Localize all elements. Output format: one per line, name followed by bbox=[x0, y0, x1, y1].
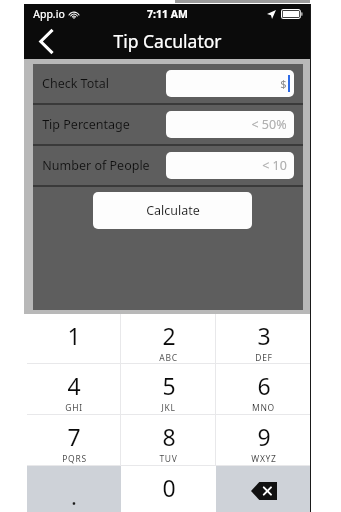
button[interactable]: 8 bbox=[121, 415, 216, 465]
staticText: 1 bbox=[67, 320, 81, 351]
staticText: MNO bbox=[252, 402, 275, 414]
staticText: GHI bbox=[65, 402, 83, 414]
staticText: 2 bbox=[162, 320, 176, 351]
staticText: App.io bbox=[33, 7, 65, 21]
staticText: < 50% bbox=[251, 116, 287, 133]
staticText: . bbox=[71, 481, 77, 511]
staticText: Tip Caculator bbox=[113, 29, 222, 53]
button[interactable]: 3 bbox=[216, 314, 311, 363]
staticText: < 10 bbox=[262, 157, 287, 174]
staticText: WXYZ bbox=[251, 453, 277, 465]
staticText: 9 bbox=[257, 421, 271, 452]
staticText: 5 bbox=[162, 370, 176, 401]
button[interactable]: 5 bbox=[121, 364, 216, 414]
button[interactable]: 7 bbox=[27, 415, 121, 465]
button[interactable]: Backspace bbox=[216, 466, 311, 512]
button[interactable]: Check Total bbox=[33, 64, 303, 103]
button[interactable]: 1 bbox=[27, 314, 121, 363]
button[interactable]: Number of People bbox=[33, 146, 303, 185]
staticText: Calculate bbox=[146, 202, 200, 219]
staticText: DEF bbox=[255, 352, 273, 363]
button[interactable]: Tip Percentage bbox=[33, 105, 303, 144]
staticText: 7 bbox=[67, 421, 81, 452]
staticText: 6 bbox=[257, 370, 271, 401]
staticText: Tip Percentage bbox=[42, 116, 130, 133]
staticText: TUV bbox=[159, 453, 178, 465]
staticText: 4 bbox=[67, 370, 81, 401]
button[interactable]: Calculate bbox=[93, 192, 252, 229]
button[interactable]: . bbox=[27, 466, 121, 512]
button[interactable]: 2 bbox=[121, 314, 216, 363]
staticText: ABC bbox=[159, 352, 178, 363]
staticText: 8 bbox=[162, 421, 176, 452]
staticText: 7:11 AM bbox=[147, 7, 188, 21]
button[interactable]: 9 bbox=[216, 415, 311, 465]
staticText: PQRS bbox=[62, 453, 87, 465]
staticText: Number of People bbox=[42, 157, 150, 174]
button[interactable]: 4 bbox=[27, 364, 121, 414]
staticText: $ bbox=[280, 76, 287, 91]
button[interactable]: 0 bbox=[121, 466, 216, 512]
staticText: JKL bbox=[161, 402, 176, 414]
staticText: Check Total bbox=[42, 75, 109, 92]
button[interactable]: Back bbox=[24, 23, 68, 59]
staticText: 3 bbox=[257, 320, 271, 351]
staticText: 0 bbox=[162, 472, 176, 503]
button[interactable]: 6 bbox=[216, 364, 311, 414]
